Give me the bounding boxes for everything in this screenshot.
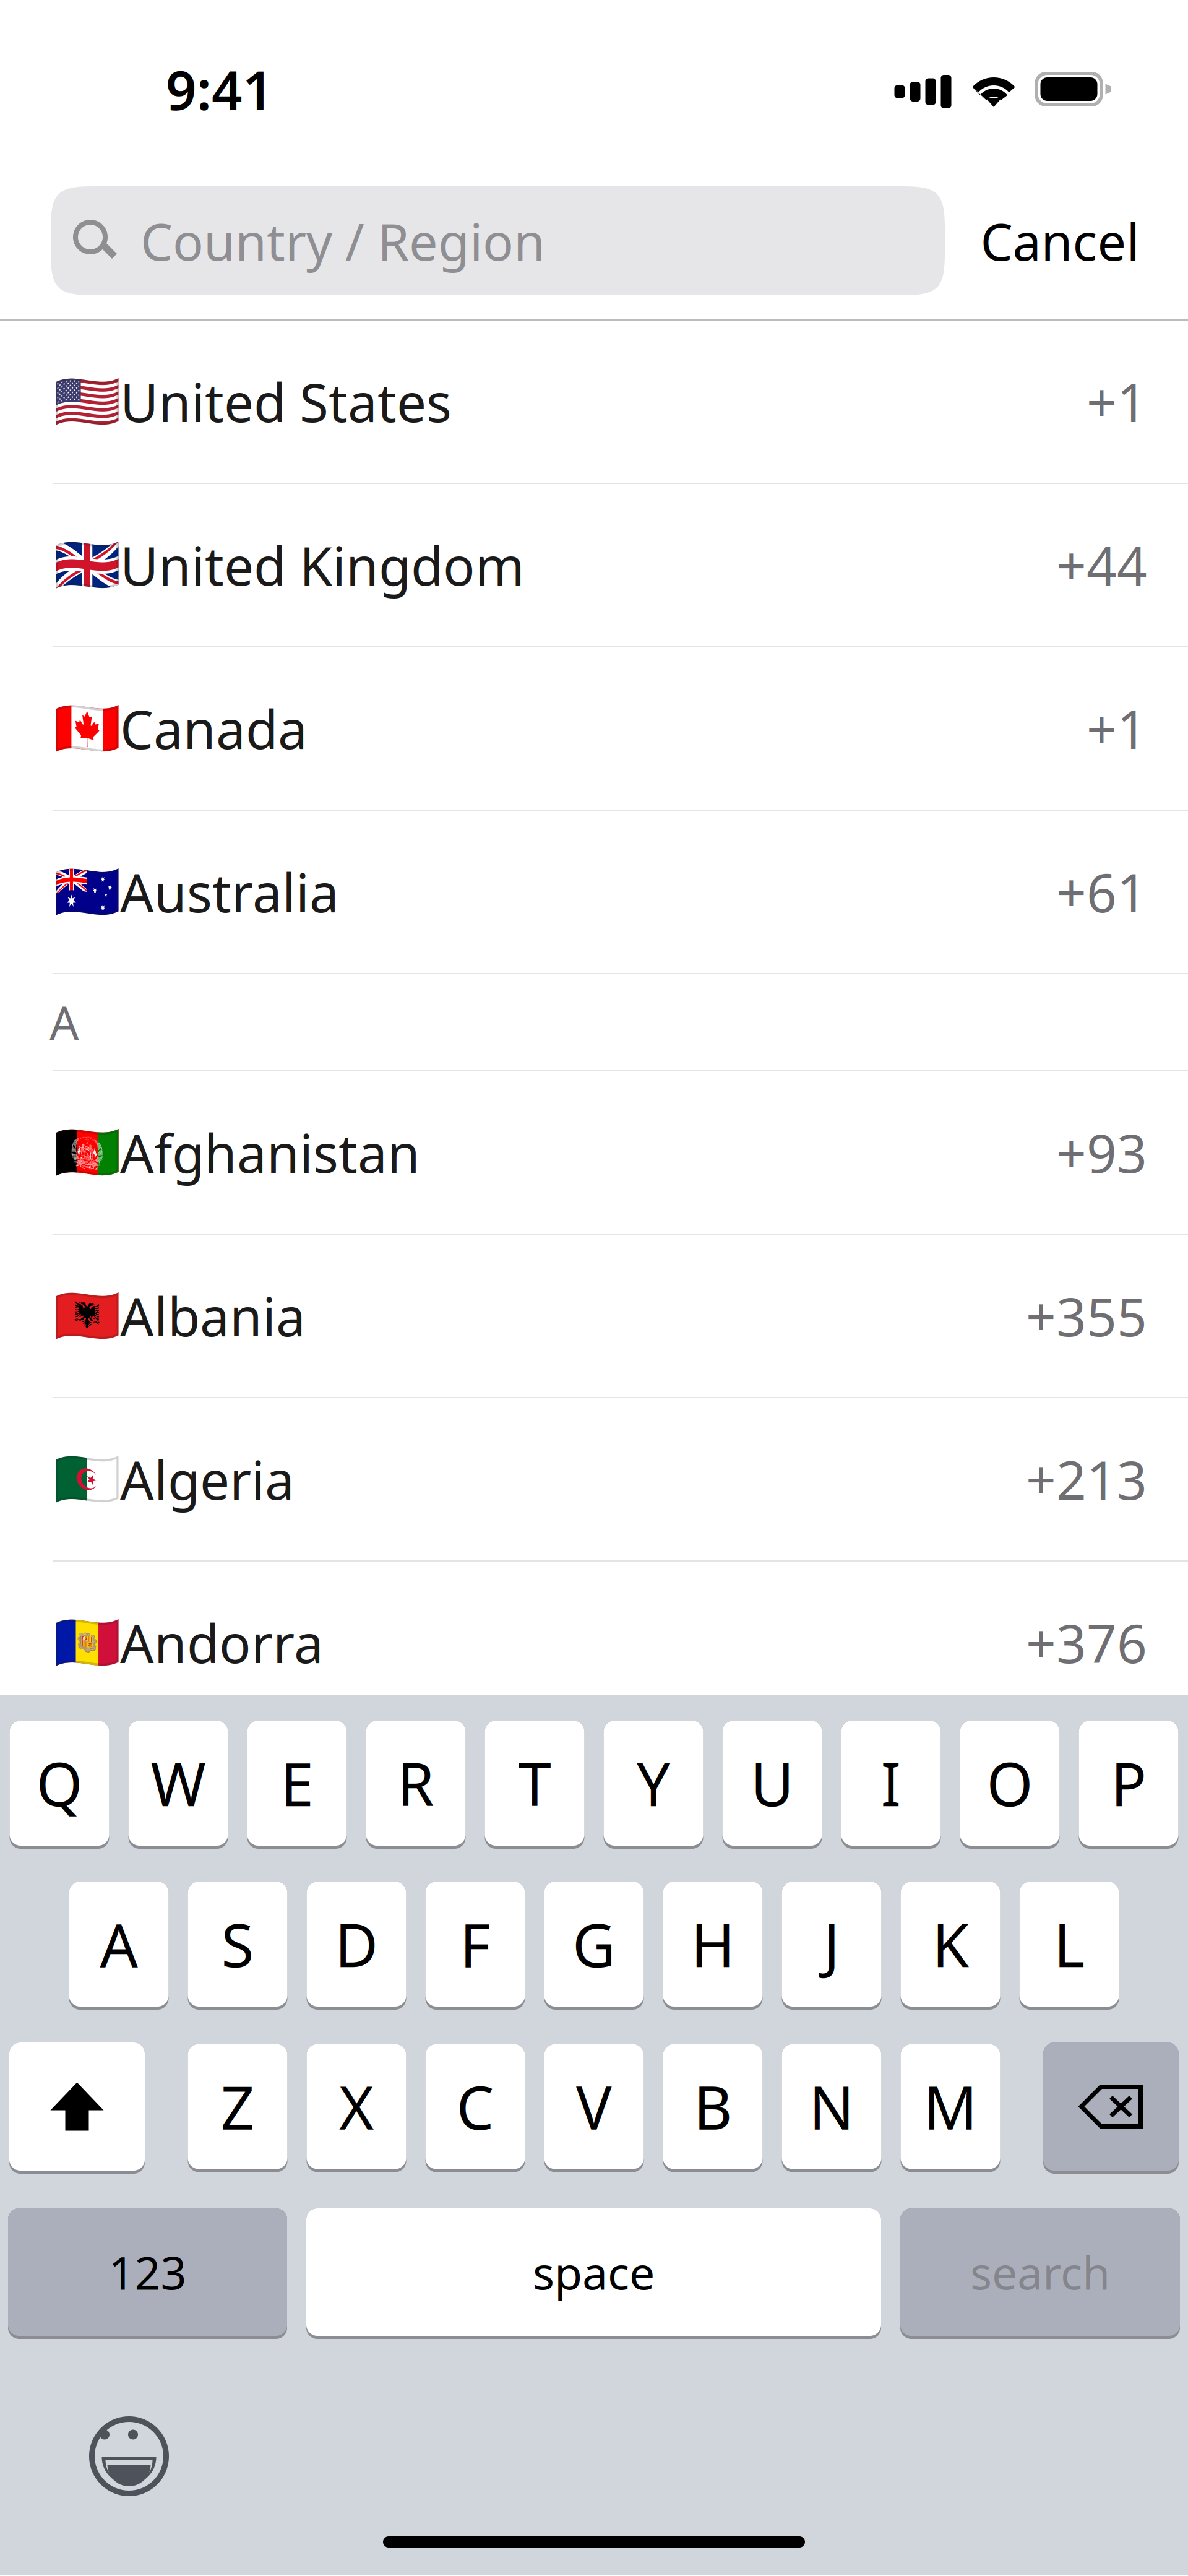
staticText: A (49, 991, 79, 1053)
staticText: +1 (1087, 693, 1147, 764)
button[interactable]: R (366, 1721, 466, 1849)
button[interactable]: Cancel (945, 186, 1175, 295)
button[interactable]: T (485, 1721, 584, 1849)
button[interactable]: G (544, 1882, 644, 2010)
staticText: space (533, 2242, 655, 2302)
button[interactable]: W (128, 1721, 228, 1849)
button[interactable]: B (663, 2044, 763, 2172)
staticText: V (576, 2067, 612, 2146)
button[interactable]: Q (10, 1721, 109, 1849)
staticText: United Kingdom (120, 530, 525, 600)
staticText: search (970, 2242, 1110, 2302)
staticText: Afghanistan (120, 1117, 420, 1187)
button[interactable]: H (663, 1882, 763, 2010)
button[interactable]: Country / Region (51, 186, 945, 295)
staticText: H (691, 1905, 735, 1984)
button[interactable]: U (722, 1721, 822, 1849)
staticText: +213 (1026, 1444, 1147, 1514)
staticText: K (932, 1905, 969, 1984)
staticText: O (987, 1744, 1033, 1823)
button[interactable]: P (1079, 1721, 1178, 1849)
staticText: Australia (120, 857, 339, 927)
button[interactable]: X (307, 2044, 406, 2172)
staticText: L (1054, 1905, 1085, 1984)
staticText: I (881, 1744, 901, 1823)
staticText: 123 (109, 2242, 187, 2302)
button[interactable]: 🇦🇩 (0, 1562, 1188, 1695)
button[interactable]: 123 (8, 2208, 287, 2339)
button[interactable]: J (782, 1882, 881, 2010)
staticText: Y (637, 1744, 670, 1823)
staticText: +61 (1056, 857, 1147, 927)
staticText: Country / Region (140, 207, 545, 275)
staticText: W (151, 1744, 206, 1823)
staticText: F (460, 1905, 491, 1984)
button[interactable]: space (306, 2208, 881, 2339)
button[interactable]: Delete (1043, 2042, 1179, 2174)
staticText: Albania (120, 1281, 306, 1351)
staticText: P (1111, 1744, 1147, 1823)
button[interactable]: S (188, 1882, 287, 2010)
staticText: Z (221, 2067, 255, 2146)
button[interactable]: E (247, 1721, 347, 1849)
button[interactable]: 🇨🇦 (0, 647, 1188, 811)
button[interactable]: M (901, 2044, 1000, 2172)
button[interactable]: 🇦🇫 (0, 1071, 1188, 1235)
staticText: Algeria (120, 1444, 295, 1514)
staticText: Q (36, 1744, 83, 1823)
staticText: 🇦🇱 (53, 1285, 121, 1347)
staticText: J (824, 1905, 840, 1984)
staticText: 🇦🇺 (53, 861, 121, 923)
staticText: +44 (1056, 530, 1147, 600)
button[interactable]: search (900, 2208, 1180, 2339)
button[interactable]: I (841, 1721, 941, 1849)
staticText: Andorra (120, 1608, 324, 1678)
button[interactable]: A (69, 1882, 169, 2010)
staticText: Cancel (980, 207, 1139, 275)
staticText: C (456, 2067, 494, 2146)
button[interactable]: 🇦🇺 (0, 811, 1188, 974)
staticText: 🇦🇩 (53, 1612, 121, 1674)
staticText: 🇬🇧 (53, 534, 121, 596)
staticText: A (100, 1905, 138, 1984)
staticText: +376 (1026, 1608, 1147, 1678)
button[interactable]: 🇦🇱 (0, 1235, 1188, 1398)
staticText: N (809, 2067, 854, 2146)
button[interactable]: 🇩🇿 (0, 1398, 1188, 1562)
staticText: United States (120, 367, 452, 437)
staticText: E (281, 1744, 313, 1823)
button[interactable]: 🇺🇸 (0, 321, 1188, 484)
staticText: 🇦🇫 (53, 1121, 121, 1184)
button[interactable]: O (960, 1721, 1060, 1849)
button[interactable]: F (425, 1882, 525, 2010)
staticText: +355 (1026, 1281, 1147, 1351)
staticText: +1 (1087, 367, 1147, 437)
button[interactable]: C (425, 2044, 525, 2172)
staticText: U (751, 1744, 794, 1823)
staticText: 9:41 (166, 54, 273, 125)
staticText: 🇨🇦 (53, 697, 121, 760)
staticText: +93 (1056, 1117, 1147, 1187)
button[interactable]: Y (604, 1721, 703, 1849)
button[interactable]: Z (188, 2044, 287, 2172)
button[interactable]: 🇬🇧 (0, 484, 1188, 647)
staticText: R (397, 1744, 434, 1823)
staticText: M (923, 2067, 977, 2146)
staticText: X (339, 2067, 374, 2146)
staticText: B (694, 2067, 732, 2146)
staticText: D (335, 1905, 378, 1984)
button[interactable]: D (307, 1882, 406, 2010)
button[interactable]: L (1019, 1882, 1119, 2010)
staticText: G (572, 1905, 616, 1984)
button[interactable]: Emoji keyboard (89, 2416, 169, 2496)
button[interactable]: N (782, 2044, 881, 2172)
button[interactable]: Shift (9, 2042, 145, 2174)
staticText: Canada (120, 693, 308, 764)
staticText: T (518, 1744, 551, 1823)
staticText: 🇺🇸 (53, 371, 121, 433)
staticText: S (221, 1905, 254, 1984)
button[interactable]: V (544, 2044, 644, 2172)
staticText: 🇩🇿 (53, 1448, 121, 1510)
button[interactable]: K (901, 1882, 1000, 2010)
